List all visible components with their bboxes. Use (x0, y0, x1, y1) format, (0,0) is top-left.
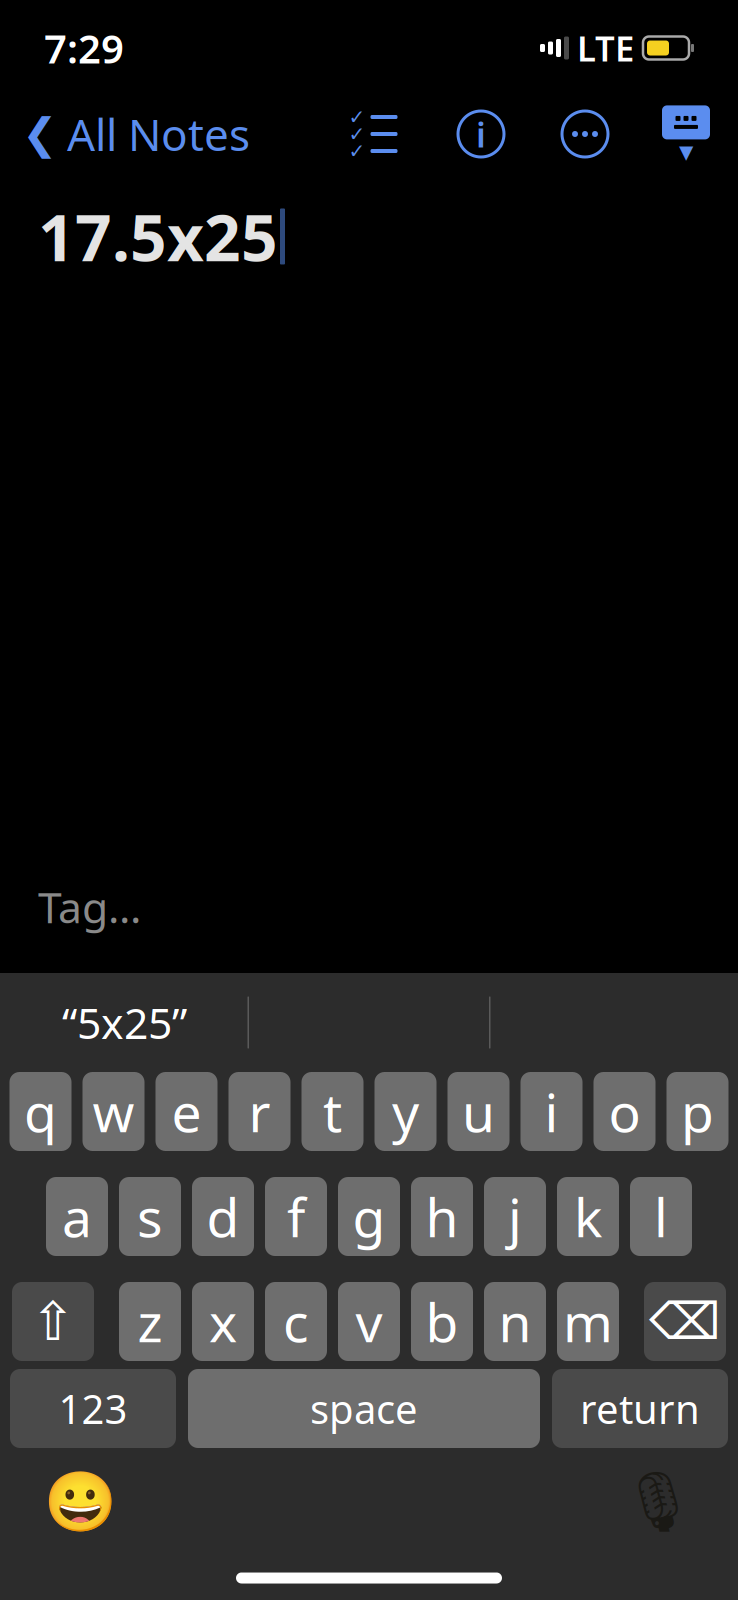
staticText: 😀 (43, 1468, 116, 1535)
staticText: y (392, 1076, 419, 1147)
button[interactable]: Format (458, 111, 504, 157)
staticText: i (476, 111, 486, 157)
staticText: ✓ (348, 123, 365, 145)
button[interactable]: x (192, 1282, 254, 1361)
staticText: All Notes (67, 105, 250, 163)
staticText: f (287, 1181, 305, 1252)
button[interactable]: space (188, 1369, 540, 1448)
staticText: n (498, 1286, 531, 1357)
staticText: ❮ (22, 110, 58, 158)
staticText: Tag... (38, 878, 141, 935)
staticText: b (425, 1286, 458, 1357)
staticText: a (62, 1181, 92, 1252)
button[interactable]: o (593, 1072, 655, 1151)
button[interactable]: More (562, 111, 608, 157)
staticText: u (462, 1076, 495, 1147)
button[interactable]: e (155, 1072, 217, 1151)
button[interactable]: j (484, 1177, 546, 1256)
staticText: i (544, 1076, 558, 1147)
staticText: v (355, 1286, 382, 1357)
button[interactable]: c (265, 1282, 327, 1361)
button[interactable]: y (374, 1072, 436, 1151)
button[interactable]: Hide Keyboard (660, 107, 712, 161)
button[interactable]: ❮ (22, 97, 250, 171)
button[interactable]: g (338, 1177, 400, 1256)
button[interactable]: return (552, 1369, 728, 1448)
button[interactable]: d (192, 1177, 254, 1256)
button[interactable]: r (228, 1072, 290, 1151)
staticText: x (209, 1286, 237, 1357)
button[interactable]: n (484, 1282, 546, 1361)
staticText: ⇧ (30, 1291, 75, 1352)
button[interactable]: u (447, 1072, 509, 1151)
button[interactable]: b (411, 1282, 473, 1361)
staticText: c (283, 1286, 309, 1357)
staticText: t (323, 1076, 342, 1147)
button[interactable]: l (630, 1177, 692, 1256)
staticText: ✓ (348, 106, 365, 128)
staticText: ⌫ (649, 1293, 721, 1350)
button[interactable]: p (666, 1072, 728, 1151)
staticText: 123 (58, 1382, 127, 1435)
button[interactable]: q (9, 1072, 71, 1151)
staticText: h (425, 1181, 458, 1252)
staticText: ✓ (348, 140, 365, 162)
button[interactable]: Emoji (48, 1470, 112, 1534)
button[interactable]: h (411, 1177, 473, 1256)
staticText: e (171, 1076, 201, 1147)
staticText: o (608, 1076, 640, 1147)
staticText: space (310, 1382, 418, 1435)
button[interactable]: Dictation (626, 1470, 690, 1534)
button[interactable]: i (520, 1072, 582, 1151)
staticText: LTE (577, 25, 634, 71)
staticText: r (248, 1076, 270, 1147)
staticText: ▼ (679, 141, 693, 163)
staticText: z (137, 1286, 162, 1357)
staticText: 🎙 (621, 1468, 695, 1535)
button[interactable]: Tag... (38, 872, 141, 941)
staticText: 7:29 (44, 21, 124, 74)
staticText: w (92, 1076, 134, 1147)
staticText: s (137, 1181, 163, 1252)
staticText: d (206, 1181, 239, 1252)
button[interactable]: Delete (644, 1282, 726, 1361)
staticText: p (681, 1076, 714, 1147)
button[interactable]: m (557, 1282, 619, 1361)
staticText: m (563, 1286, 613, 1357)
button[interactable]: t (301, 1072, 363, 1151)
staticText: q (24, 1076, 57, 1147)
staticText: “5x25” (62, 994, 187, 1051)
staticText: l (654, 1181, 668, 1252)
staticText: j (508, 1181, 522, 1252)
button[interactable]: “5x25” (1, 991, 247, 1053)
staticText: return (580, 1382, 700, 1435)
button[interactable]: a (46, 1177, 108, 1256)
button[interactable]: v (338, 1282, 400, 1361)
button[interactable]: s (119, 1177, 181, 1256)
button[interactable]: Checklist (348, 111, 400, 157)
button[interactable]: 123 (10, 1369, 176, 1448)
button[interactable]: Shift (12, 1282, 94, 1361)
button[interactable]: k (557, 1177, 619, 1256)
staticText: k (574, 1181, 602, 1252)
button[interactable]: f (265, 1177, 327, 1256)
staticText: g (352, 1181, 385, 1252)
staticText: 17.5x25 (38, 194, 278, 279)
button[interactable]: z (119, 1282, 181, 1361)
button[interactable]: w (82, 1072, 144, 1151)
